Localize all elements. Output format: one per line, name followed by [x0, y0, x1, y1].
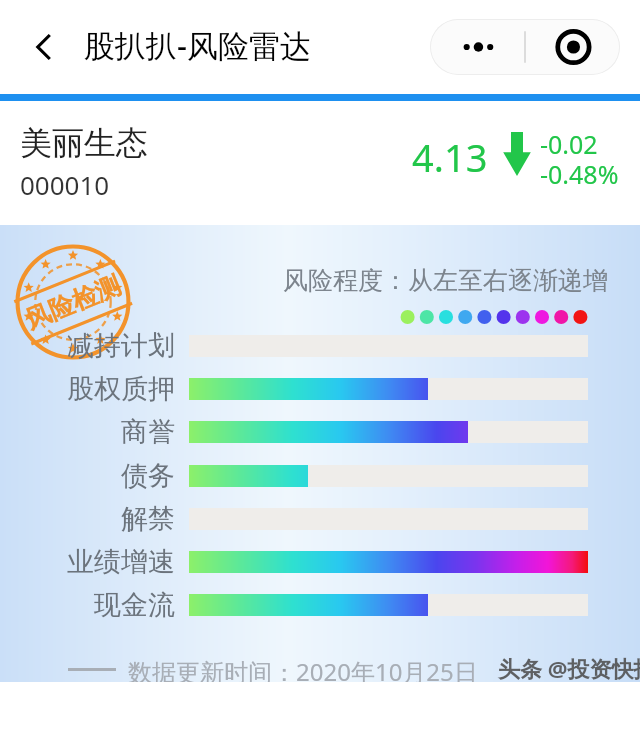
button[interactable]: 更多与关闭 — [430, 19, 620, 75]
staticText: 头条 @投资快报 — [498, 653, 640, 683]
staticText: 业绩增速 — [67, 545, 175, 579]
button[interactable] — [189, 551, 588, 573]
staticText: 风险程度：从左至右逐渐递增 — [283, 265, 608, 296]
staticText: 商誉 — [121, 415, 175, 449]
button[interactable] — [189, 421, 588, 443]
button[interactable] — [189, 594, 588, 616]
staticText: -0.48% — [540, 157, 619, 191]
staticText: 数据更新时间：2020年10月25日 — [128, 655, 478, 682]
button[interactable] — [189, 465, 588, 487]
button[interactable]: 现金流 — [0, 586, 175, 624]
staticText: 风险检测 — [21, 269, 125, 336]
button[interactable]: 解禁 — [0, 500, 175, 538]
staticText: 000010 — [20, 167, 110, 202]
button[interactable]: 商誉 — [0, 413, 175, 451]
button[interactable]: 返回 — [16, 18, 74, 76]
staticText: -0.02 — [540, 127, 598, 161]
button[interactable]: 债务 — [0, 457, 175, 495]
button[interactable]: 业绩增速 — [0, 543, 175, 581]
button[interactable] — [189, 378, 588, 400]
staticText: 股权质押 — [67, 372, 175, 406]
staticText: 美丽生态 — [20, 123, 148, 163]
staticText: 4.13 — [412, 131, 488, 183]
staticText: 股扒扒-风险雷达 — [84, 24, 311, 66]
button[interactable]: 股权质押 — [0, 370, 175, 408]
staticText: 现金流 — [94, 588, 175, 622]
staticText: 债务 — [121, 459, 175, 493]
staticText: 减持计划 — [67, 329, 175, 363]
staticText: 解禁 — [121, 502, 175, 536]
button[interactable]: 减持计划 — [0, 327, 175, 365]
